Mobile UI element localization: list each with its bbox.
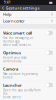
staticText: Camera bbox=[3, 66, 18, 71]
staticText: Take a picture by pressing button. bbox=[3, 72, 38, 79]
button[interactable]: Help bbox=[0, 11, 56, 17]
staticText: ▮▮▮ bbox=[49, 1, 52, 4]
button[interactable]: Launcher bbox=[0, 81, 56, 100]
staticText: Help bbox=[3, 11, 11, 17]
staticText: 9:41 bbox=[4, 1, 11, 4]
staticText: Use the messaging or shortcut app when a… bbox=[3, 36, 33, 47]
button[interactable]: Camera bbox=[0, 65, 56, 81]
staticText: Learn center bbox=[3, 18, 25, 23]
staticText: Optimus bbox=[3, 50, 21, 55]
staticText: Open the app quickly from the home scree… bbox=[3, 88, 40, 99]
button[interactable]: Back bbox=[2, 6, 4, 10]
staticText: Gesture settings bbox=[6, 5, 40, 11]
button[interactable]: Optimus bbox=[0, 48, 56, 65]
staticText: Launcher bbox=[3, 82, 22, 88]
button[interactable]: Voice smart call bbox=[0, 29, 56, 48]
staticText: Record your data continuously. bbox=[3, 56, 26, 63]
button[interactable]: Learn center bbox=[0, 18, 56, 24]
staticText: Voice smart call bbox=[3, 30, 32, 36]
